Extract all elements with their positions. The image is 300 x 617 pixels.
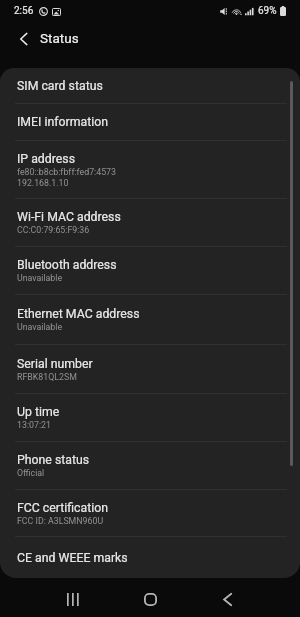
staticText: Wi-Fi MAC address	[17, 210, 121, 224]
button[interactable]: IMEI information	[0, 103, 300, 140]
button[interactable]: Wi-Fi MAC address	[0, 198, 300, 246]
staticText: Bluetooth address	[17, 258, 117, 272]
staticText: Official	[17, 468, 45, 478]
staticText: 2:56	[14, 5, 34, 17]
staticText: Ethernet MAC address	[17, 307, 140, 321]
button[interactable]: IP address	[0, 140, 300, 198]
staticText: Unavailable	[17, 273, 63, 283]
staticText: FCC ID: A3LSMN960U	[17, 516, 104, 526]
button[interactable]: FCC certification	[0, 489, 300, 536]
button[interactable]: Ethernet MAC address	[0, 294, 300, 344]
button[interactable]: CE and WEEE marks	[0, 536, 300, 578]
staticText: Phone status	[17, 453, 90, 467]
staticText: Serial number	[17, 357, 93, 371]
staticText: fe80::b8cb:fbff:fed7:4573	[17, 167, 117, 177]
staticText: Status	[40, 30, 79, 46]
staticText: Unavailable	[17, 322, 63, 332]
staticText: 192.168.1.10	[17, 178, 69, 188]
staticText: FCC certification	[17, 501, 109, 515]
button[interactable]: Phone status	[0, 441, 300, 489]
button[interactable]: Recent apps	[53, 580, 92, 617]
button[interactable]: Home	[131, 580, 170, 617]
staticText: IMEI information	[17, 115, 108, 129]
button[interactable]: Bluetooth address	[0, 246, 300, 294]
staticText: IP address	[17, 152, 75, 166]
staticText: CC:C0:79:65:F9:36	[17, 225, 90, 235]
staticText: 69%	[258, 5, 277, 17]
button[interactable]: Back	[208, 580, 247, 617]
button[interactable]: Serial number	[0, 344, 300, 393]
staticText: Up time	[17, 405, 60, 419]
button[interactable]: SIM card status	[0, 68, 300, 103]
staticText: RFBK81QL2SM	[17, 372, 77, 382]
button[interactable]: Navigate up	[8, 23, 40, 55]
button[interactable]: Up time	[0, 393, 300, 441]
staticText: SIM card status	[17, 79, 103, 93]
staticText: CE and WEEE marks	[17, 551, 128, 565]
staticText: 13:07:21	[17, 420, 51, 430]
